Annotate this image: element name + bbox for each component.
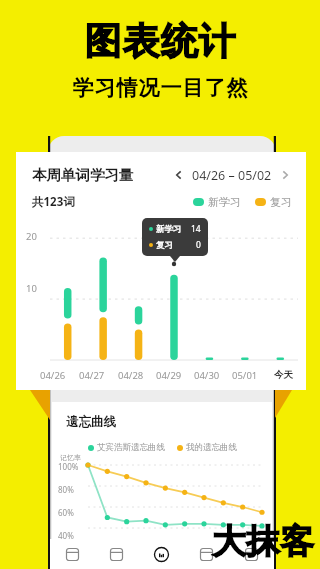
staticText: 学习情况一目了然 [72,75,248,101]
staticText: 14 [191,223,201,235]
staticText: 复习 [156,240,173,251]
staticText: 100% [58,461,79,472]
staticText: 04/26 [40,369,66,382]
staticText: 新学习 [156,224,182,235]
button[interactable]: Cards [94,539,139,569]
button[interactable]: 我的遗忘曲线 [177,442,237,453]
button[interactable]: 新学习 [193,195,241,209]
staticText: 新学习 [208,195,241,209]
staticText: 04/30 [194,369,220,382]
staticText: 10 [26,282,37,295]
staticText: 60% [58,507,74,518]
staticText: 今天 [274,369,293,381]
staticText: 大抹客 [212,520,314,563]
button[interactable]: 艾宾浩斯遗忘曲线 [88,442,165,453]
staticText: 遗忘曲线 [66,414,116,430]
staticText: 复习 [270,195,292,209]
staticText: 艾宾浩斯遗忘曲线 [97,442,165,453]
staticText: 记忆率 [60,453,81,462]
button[interactable]: Statistics [139,539,184,569]
button[interactable]: Next week [278,168,292,182]
staticText: 20 [26,230,37,243]
button[interactable]: Word book [50,539,94,569]
staticText: 04/29 [156,369,182,382]
button[interactable]: Profile [229,539,274,569]
staticText: 80% [58,484,74,495]
button[interactable]: 复习 [255,195,292,209]
staticText: 04/28 [118,369,144,382]
staticText: 05/01 [232,369,258,382]
button[interactable]: Notes [184,539,229,569]
staticText: 本周单词学习量 [32,166,134,184]
staticText: 我的遗忘曲线 [186,442,237,453]
button[interactable]: Previous week [172,168,186,182]
staticText: 0 [196,239,201,251]
staticText: 图表统计 [84,18,236,65]
staticText: 04/26 – 05/02 [192,167,272,184]
staticText: 04/27 [79,369,105,382]
staticText: 40% [58,530,74,541]
staticText: 共123词 [32,194,75,210]
